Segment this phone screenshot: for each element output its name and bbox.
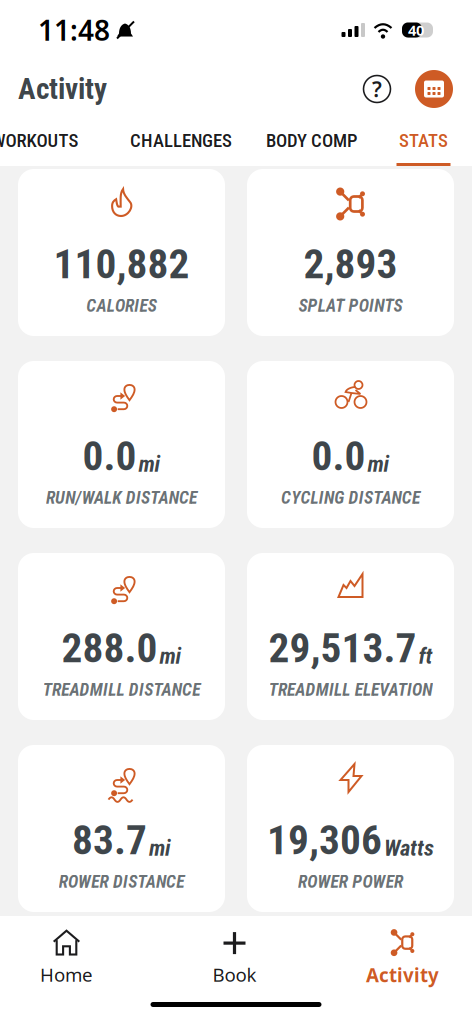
staticText: ft [418, 643, 432, 669]
button[interactable]: CHALLENGES [107, 118, 254, 166]
button[interactable]: 0.0 [18, 361, 225, 528]
staticText: mi [159, 643, 181, 669]
staticText: mi [149, 835, 171, 861]
button[interactable]: 288.0 [18, 553, 225, 720]
staticText: 19,306 [267, 816, 382, 864]
staticText: BODY COMP [266, 130, 357, 151]
staticText: Home [40, 962, 93, 987]
button[interactable]: 83.7 [18, 745, 225, 912]
staticText: SPLAT POINTS [298, 295, 403, 316]
button[interactable]: Help [362, 74, 392, 104]
button[interactable]: 19,306 [247, 745, 454, 912]
staticText: Book [212, 962, 256, 987]
staticText: ROWER DISTANCE [59, 871, 184, 892]
staticText: Watts [384, 835, 434, 861]
staticText: WORKOUTS [0, 130, 78, 151]
button[interactable]: Activity [318, 927, 472, 989]
staticText: RUN/WALK DISTANCE [46, 487, 197, 508]
button[interactable]: Home [0, 927, 150, 989]
button[interactable]: Book [150, 927, 318, 989]
button[interactable]: 29,513.7 [247, 553, 454, 720]
staticText: CALORIES [86, 295, 157, 316]
staticText: 11:48 [38, 11, 110, 49]
staticText: Activity [366, 962, 439, 987]
button[interactable]: STATS [368, 118, 472, 166]
button[interactable]: 110,882 [18, 169, 225, 336]
staticText: CHALLENGES [130, 130, 232, 151]
staticText: 0.0 [82, 432, 136, 480]
button[interactable]: Calendar [414, 69, 454, 109]
staticText: STATS [399, 130, 448, 151]
staticText: 40 [408, 20, 424, 40]
staticText: TREADMILL DISTANCE [43, 679, 200, 700]
staticText: mi [138, 451, 160, 477]
staticText: 0.0 [311, 432, 365, 480]
button[interactable]: 0.0 [247, 361, 454, 528]
staticText: ROWER POWER [298, 871, 403, 892]
button[interactable]: BODY COMP [254, 118, 368, 166]
staticText: 2,893 [303, 240, 397, 288]
staticText: 110,882 [53, 240, 189, 288]
staticText: 83.7 [72, 816, 147, 864]
staticText: ? [372, 75, 382, 103]
staticText: 29,513.7 [268, 624, 416, 672]
button[interactable]: WORKOUTS [0, 118, 107, 166]
staticText: Activity [18, 72, 107, 106]
staticText: TREADMILL ELEVATION [269, 679, 432, 700]
staticText: 288.0 [61, 624, 157, 672]
staticText: CYCLING DISTANCE [281, 487, 420, 508]
staticText: mi [367, 451, 389, 477]
button[interactable]: 2,893 [247, 169, 454, 336]
